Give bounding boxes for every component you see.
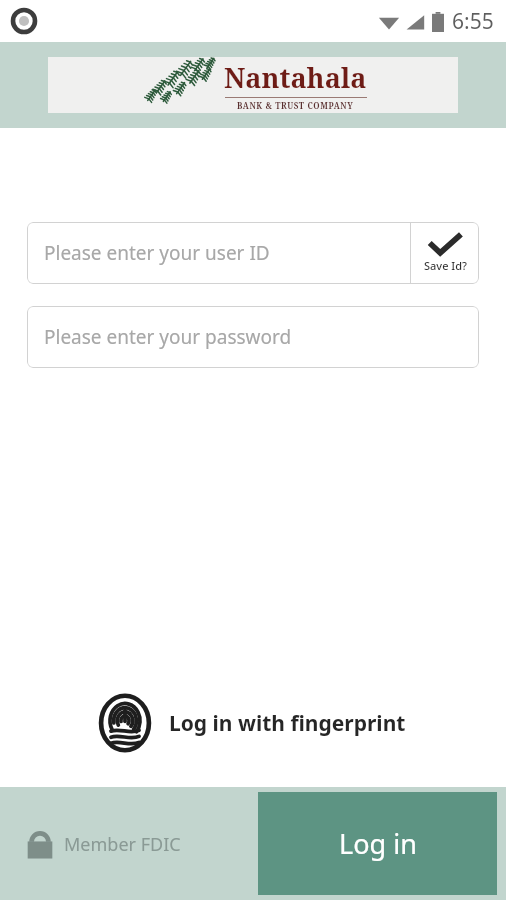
staticText: Log in <box>339 825 417 862</box>
button[interactable]: Log in with fingerprint <box>95 690 410 756</box>
staticText: Please enter your user ID <box>44 240 270 266</box>
staticText: Log in with fingerprint <box>169 709 406 738</box>
button[interactable]: Log in <box>258 792 497 895</box>
button[interactable]: Member FDIC <box>22 824 185 864</box>
staticText: Save Id? <box>424 258 467 273</box>
button[interactable]: Please enter your password <box>27 306 479 368</box>
staticText: 6:55 <box>452 7 494 36</box>
staticText: Nantahala <box>224 59 367 96</box>
staticText: Member FDIC <box>64 832 181 857</box>
button[interactable]: Save Id <box>411 222 479 284</box>
staticText: BANK & TRUST COMPANY <box>237 100 354 111</box>
button[interactable]: Please enter your user ID <box>27 222 410 284</box>
staticText: Please enter your password <box>44 324 292 350</box>
